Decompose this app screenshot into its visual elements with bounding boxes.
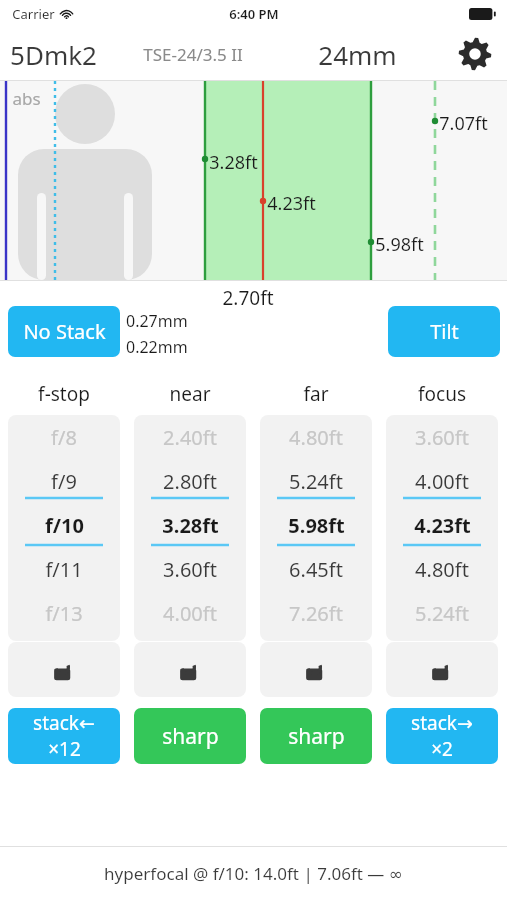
button[interactable]: sharp: [260, 708, 372, 764]
staticText: ×2: [431, 736, 453, 762]
staticText: 3.60ft: [415, 424, 469, 451]
staticText: ×12: [48, 736, 81, 762]
staticText: 7.07ft: [439, 111, 488, 136]
staticText: 5Dmk2: [10, 37, 97, 72]
staticText: f/10: [45, 512, 84, 539]
staticText: 4.23ft: [414, 512, 471, 539]
staticText: Tilt: [430, 318, 459, 345]
staticText: 5.98ft: [375, 232, 424, 257]
staticText: hyperfocal @ f/10: 14.0ft | 7.06ft — ∞: [104, 862, 403, 885]
staticText: focus: [386, 381, 498, 407]
button[interactable]: 3.60ft: [386, 415, 498, 641]
staticText: 4.80ft: [415, 556, 469, 583]
staticText: 2.70ft: [222, 285, 274, 311]
staticText: TSE-24/3.5 II: [143, 43, 243, 66]
staticText: 5.24ft: [289, 468, 343, 495]
staticText: 0.27mm: [126, 310, 188, 332]
staticText: stack→: [411, 710, 473, 736]
button[interactable]: 2.40ft: [134, 415, 246, 641]
staticText: f/9: [51, 468, 77, 495]
staticText: 3.28ft: [209, 150, 258, 175]
button[interactable]: stack→: [386, 708, 498, 764]
button[interactable]: sharp: [134, 708, 246, 764]
button[interactable]: stack←: [8, 708, 120, 764]
button[interactable]: f/8: [8, 415, 120, 641]
staticText: far: [260, 381, 372, 407]
staticText: 4.00ft: [415, 468, 469, 495]
staticText: 4.80ft: [289, 424, 343, 451]
staticText: Carrier: [12, 5, 55, 23]
staticText: 6:40 PM: [229, 5, 279, 23]
button[interactable]: Tilt: [388, 306, 500, 357]
staticText: 4.23ft: [267, 191, 316, 216]
staticText: near: [134, 381, 246, 407]
button[interactable]: Settings: [451, 30, 499, 78]
staticText: 0.22mm: [126, 336, 188, 358]
button[interactable]: Lock f-stop: [8, 642, 120, 697]
staticText: f/11: [45, 556, 83, 583]
button[interactable]: Lock far: [260, 642, 372, 697]
staticText: f-stop: [8, 381, 120, 407]
staticText: 5.24ft: [415, 600, 469, 627]
staticText: 2.40ft: [163, 424, 217, 451]
staticText: 7.26ft: [289, 600, 343, 627]
staticText: stack←: [33, 710, 95, 736]
staticText: No Stack: [23, 318, 106, 345]
button[interactable]: Lock focus: [386, 642, 498, 697]
staticText: 3.60ft: [163, 556, 217, 583]
staticText: sharp: [288, 722, 345, 751]
staticText: f/8: [51, 424, 77, 451]
staticText: f/13: [45, 600, 83, 627]
button[interactable]: 4.80ft: [260, 415, 372, 641]
staticText: 3.28ft: [162, 512, 219, 539]
button[interactable]: No Stack: [8, 306, 120, 357]
button[interactable]: Lock near: [134, 642, 246, 697]
staticText: sharp: [162, 722, 219, 751]
staticText: 4.00ft: [163, 600, 217, 627]
staticText: 2.80ft: [163, 468, 217, 495]
staticText: 5.98ft: [288, 512, 345, 539]
staticText: 6.45ft: [289, 556, 343, 583]
staticText: abs: [12, 87, 41, 110]
staticText: 24mm: [318, 37, 397, 72]
